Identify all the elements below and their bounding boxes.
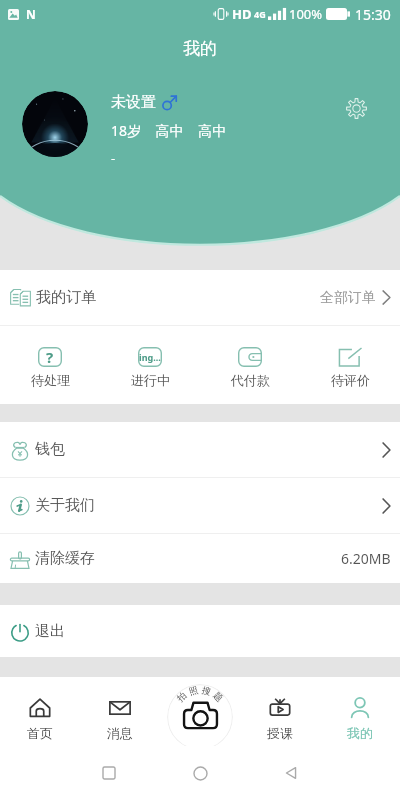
staticText: 搜	[201, 684, 212, 697]
button[interactable]: 退出	[0, 605, 400, 657]
button[interactable]: ing...	[100, 326, 200, 404]
button[interactable]: 我的	[320, 677, 400, 746]
button[interactable]: ?	[0, 326, 100, 404]
staticText: 代付款	[231, 372, 270, 388]
button[interactable]: Back	[278, 760, 304, 786]
staticText: 我的	[183, 38, 217, 59]
staticText: ?	[46, 347, 54, 367]
button[interactable]: 首页	[0, 677, 80, 746]
button[interactable]: 清除缓存	[0, 534, 400, 583]
staticText: 6.20MB	[341, 549, 391, 568]
staticText: 待评价	[331, 372, 370, 388]
button[interactable]: 授课	[240, 677, 320, 746]
button[interactable]: 待评价	[300, 326, 400, 404]
button[interactable]: 消息	[80, 677, 160, 746]
staticText: ing...	[139, 351, 161, 363]
staticText: 消息	[107, 725, 133, 741]
staticText: 全部订单	[320, 289, 376, 307]
staticText: 未设置	[111, 93, 156, 112]
staticText: -	[111, 149, 116, 167]
staticText: 100%	[289, 5, 323, 23]
staticText: 进行中	[131, 372, 170, 388]
button[interactable]: 我的订单	[0, 270, 400, 325]
button[interactable]: 代付款	[200, 326, 300, 404]
staticText: 照	[188, 684, 199, 697]
staticText: N	[26, 6, 36, 22]
staticText: 关于我们	[35, 496, 95, 515]
staticText: 待处理	[31, 372, 70, 388]
button[interactable]: Profile photo	[22, 91, 88, 157]
staticText: 清除缓存	[35, 549, 95, 568]
staticText: 18岁 高中 高中	[111, 121, 227, 140]
staticText: 我的订单	[36, 288, 96, 307]
staticText: 题	[211, 689, 226, 704]
staticText: 钱包	[35, 440, 65, 459]
button[interactable]: Settings	[342, 94, 370, 122]
staticText: 4G	[254, 8, 266, 20]
button[interactable]: Home	[187, 760, 213, 786]
staticText: 退出	[35, 622, 65, 641]
staticText: HD	[232, 5, 252, 23]
button[interactable]: 钱包	[0, 422, 400, 477]
staticText: 授课	[267, 725, 293, 741]
button[interactable]: Recents	[96, 760, 122, 786]
button[interactable]: 拍照搜题 camera search	[167, 684, 233, 750]
staticText: 拍	[174, 689, 189, 704]
staticText: 我的	[347, 725, 373, 741]
button[interactable]: 关于我们	[0, 478, 400, 533]
staticText: 15:30	[355, 5, 391, 24]
staticText: 首页	[27, 725, 53, 741]
